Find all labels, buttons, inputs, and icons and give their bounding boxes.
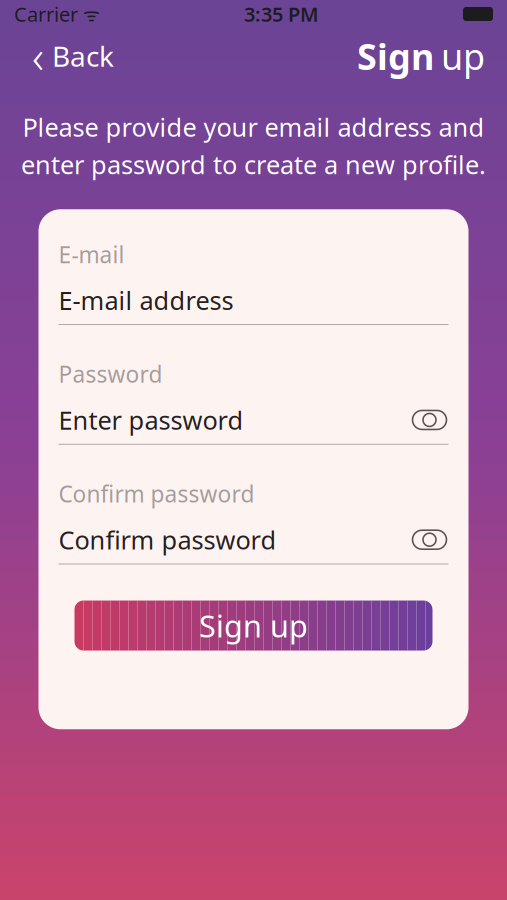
staticText: Please provide your email address and — [22, 110, 484, 144]
staticText: Confirm password — [58, 523, 276, 556]
staticText: 3:35 PM — [244, 1, 319, 27]
button[interactable]: Show Password — [410, 408, 448, 432]
staticText: up — [441, 32, 485, 80]
staticText: ᯤ — [78, 2, 100, 26]
staticText: Password — [58, 359, 162, 389]
staticText: Back — [52, 37, 114, 75]
staticText: Confirm password — [58, 479, 254, 509]
button[interactable]: ‹ — [22, 20, 124, 92]
staticText: E-mail address — [58, 283, 233, 317]
staticText: Sign up — [199, 605, 308, 646]
staticText: E-mail — [58, 239, 124, 269]
staticText: Enter password — [58, 403, 243, 437]
staticText: ‹ — [32, 26, 44, 86]
staticText: Carrier — [14, 1, 78, 27]
button[interactable]: Sign up — [74, 600, 432, 650]
button[interactable]: Show Confirm password — [410, 528, 448, 552]
staticText: Sign — [357, 32, 434, 80]
staticText: enter password to create a new profile. — [21, 148, 486, 181]
